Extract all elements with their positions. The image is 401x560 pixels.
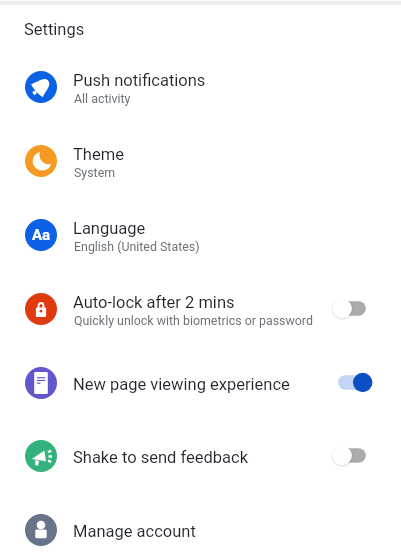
staticText: Quickly unlock with biometrics or passwo…: [74, 313, 313, 328]
staticText: Shake to send feedback: [73, 448, 249, 467]
staticText: Aa: [32, 226, 51, 244]
staticText: Language: [73, 219, 146, 238]
staticText: New page viewing experience: [73, 375, 290, 394]
staticText: All activity: [74, 91, 131, 106]
button[interactable]: Push notifications: [0, 50, 401, 124]
staticText: Settings: [24, 20, 85, 39]
button[interactable]: Switch on: [330, 371, 374, 394]
button[interactable]: Aa: [0, 198, 401, 272]
staticText: Push notifications: [73, 71, 206, 90]
button[interactable]: Settings: [24, 20, 85, 39]
staticText: Theme: [73, 145, 124, 164]
button[interactable]: New page viewing experience: [0, 346, 401, 420]
button[interactable]: Switch off: [330, 444, 374, 467]
button[interactable]: Switch off: [330, 297, 374, 320]
button[interactable]: Auto-lock after 2 mins: [0, 272, 401, 346]
button[interactable]: Manage account: [0, 493, 401, 560]
button[interactable]: Theme: [0, 124, 401, 198]
staticText: System: [74, 165, 116, 180]
staticText: Auto-lock after 2 mins: [73, 293, 235, 312]
staticText: Manage account: [73, 522, 196, 541]
staticText: English (United States): [74, 239, 200, 254]
button[interactable]: Shake to send feedback: [0, 419, 401, 493]
